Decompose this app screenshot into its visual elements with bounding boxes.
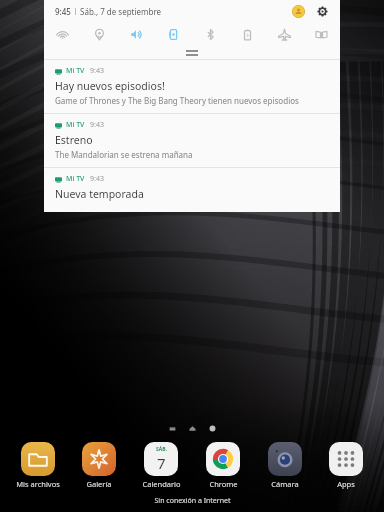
button[interactable]: Cámara — [257, 442, 313, 489]
staticText: 9:43 — [90, 174, 104, 184]
staticText: The Mandalorian se estrena mañana — [55, 149, 193, 160]
staticText: Apps — [337, 479, 355, 489]
button[interactable]: Ajustes — [315, 4, 329, 18]
staticText: Estreno — [55, 133, 93, 147]
staticText: Sáb., 7 de septiembre — [80, 6, 162, 17]
button[interactable]: Ahorro de batería — [229, 22, 266, 46]
button[interactable]: Galería — [71, 442, 127, 489]
button[interactable]: Inicio — [188, 424, 197, 433]
button[interactable]: Mi TV — [44, 168, 340, 212]
staticText: Cámara — [271, 479, 299, 489]
staticText: Mi TV — [66, 120, 85, 130]
staticText: 9:45 — [55, 6, 71, 17]
staticText: Mis archivos — [16, 479, 60, 489]
button[interactable]: Mi TV — [44, 60, 340, 113]
button[interactable]: Chrome — [195, 442, 251, 489]
staticText: Sin conexión a Internet — [154, 496, 231, 506]
staticText: Game of Thrones y The Big Bang Theory ti… — [55, 95, 299, 106]
staticText: Calendario — [142, 479, 181, 489]
staticText: Hay nuevos episodios! — [55, 79, 165, 93]
button[interactable]: Perfil de usuario — [292, 5, 305, 18]
button[interactable]: Mis archivos — [10, 442, 66, 489]
staticText: Mi TV — [66, 66, 85, 76]
staticText: Chrome — [209, 479, 238, 489]
button[interactable]: Mi TV — [44, 114, 340, 167]
staticText: 9:43 — [90, 66, 104, 76]
button[interactable]: Sonido — [118, 22, 155, 46]
button[interactable]: Rotación automática — [155, 22, 192, 46]
staticText: Nueva temporada — [55, 187, 144, 201]
staticText: Mi TV — [66, 174, 85, 184]
staticText: 7 — [157, 453, 166, 473]
button[interactable]: Bluetooth — [192, 22, 229, 46]
button[interactable]: Ubicación — [81, 22, 118, 46]
button[interactable]: Atrás — [208, 424, 217, 433]
button[interactable]: SÁB. — [133, 442, 189, 489]
button[interactable]: Expandir panel — [44, 46, 340, 59]
staticText: Galería — [86, 479, 112, 489]
button[interactable]: Modo avión — [266, 22, 303, 46]
button[interactable]: Apps — [318, 442, 374, 489]
button[interactable]: Lista de aplicaciones — [168, 424, 177, 433]
staticText: 9:43 — [90, 120, 104, 130]
button[interactable]: Wi-Fi — [44, 22, 81, 46]
button[interactable]: Modo lectura — [303, 22, 340, 46]
staticText: SÁB. — [156, 446, 167, 453]
